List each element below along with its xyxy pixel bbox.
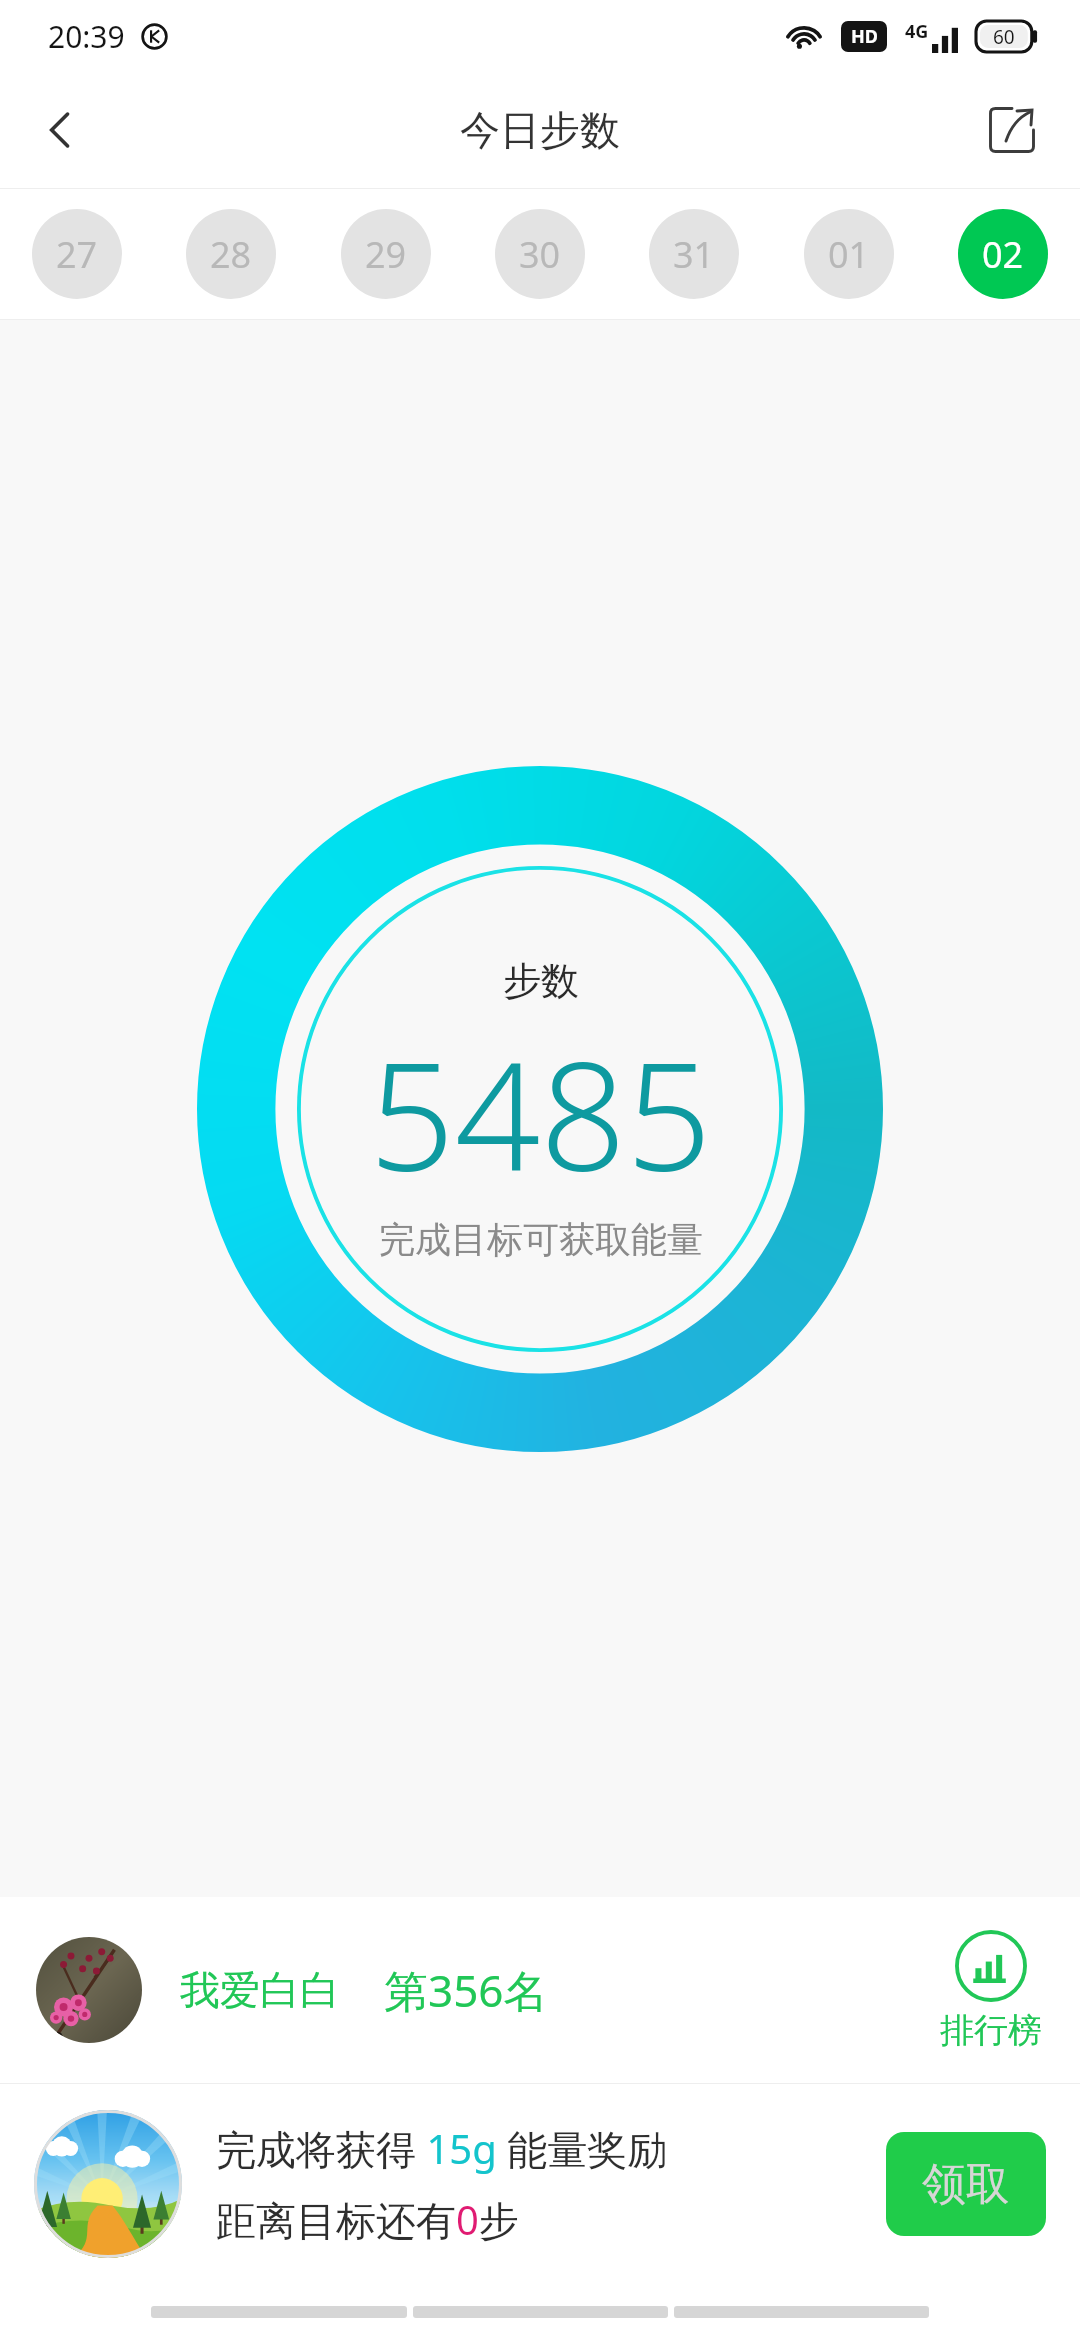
staticText: 完成将获得 15g 能量奖励: [216, 2121, 668, 2176]
button[interactable]: 30: [495, 209, 585, 299]
staticText: 第356名: [384, 1960, 548, 2020]
staticText: 步数: [503, 957, 579, 1005]
staticText: 排行榜: [940, 2009, 1042, 2052]
staticText: 31: [673, 230, 715, 279]
staticText: 我爱白白: [180, 1965, 340, 2015]
button[interactable]: Share: [970, 88, 1054, 172]
staticText: 02: [982, 230, 1024, 279]
staticText: 领取: [922, 2157, 1010, 2212]
button[interactable]: 我爱白白: [0, 1897, 1080, 2083]
staticText: 5485: [369, 1011, 712, 1215]
staticText: 20:39: [48, 16, 125, 57]
staticText: 29: [365, 230, 407, 279]
staticText: 27: [56, 230, 98, 279]
button[interactable]: 排行榜: [932, 1925, 1050, 2056]
button[interactable]: 02: [958, 209, 1048, 299]
staticText: HD: [851, 24, 878, 49]
staticText: 完成目标可获取能量: [379, 1217, 703, 1262]
button[interactable]: 29: [341, 209, 431, 299]
button[interactable]: 领取: [886, 2132, 1046, 2236]
staticText: 01: [828, 230, 870, 279]
staticText: 4G: [905, 19, 929, 44]
staticText: 28: [210, 230, 252, 279]
staticText: 60: [993, 24, 1015, 50]
staticText: 30: [519, 230, 561, 279]
button[interactable]: 28: [186, 209, 276, 299]
staticText: 今日步数: [460, 105, 620, 155]
button[interactable]: 31: [649, 209, 739, 299]
button[interactable]: 01: [804, 209, 894, 299]
staticText: 距离目标还有0步: [216, 2192, 519, 2247]
button[interactable]: 27: [32, 209, 122, 299]
button[interactable]: Back: [18, 88, 102, 172]
